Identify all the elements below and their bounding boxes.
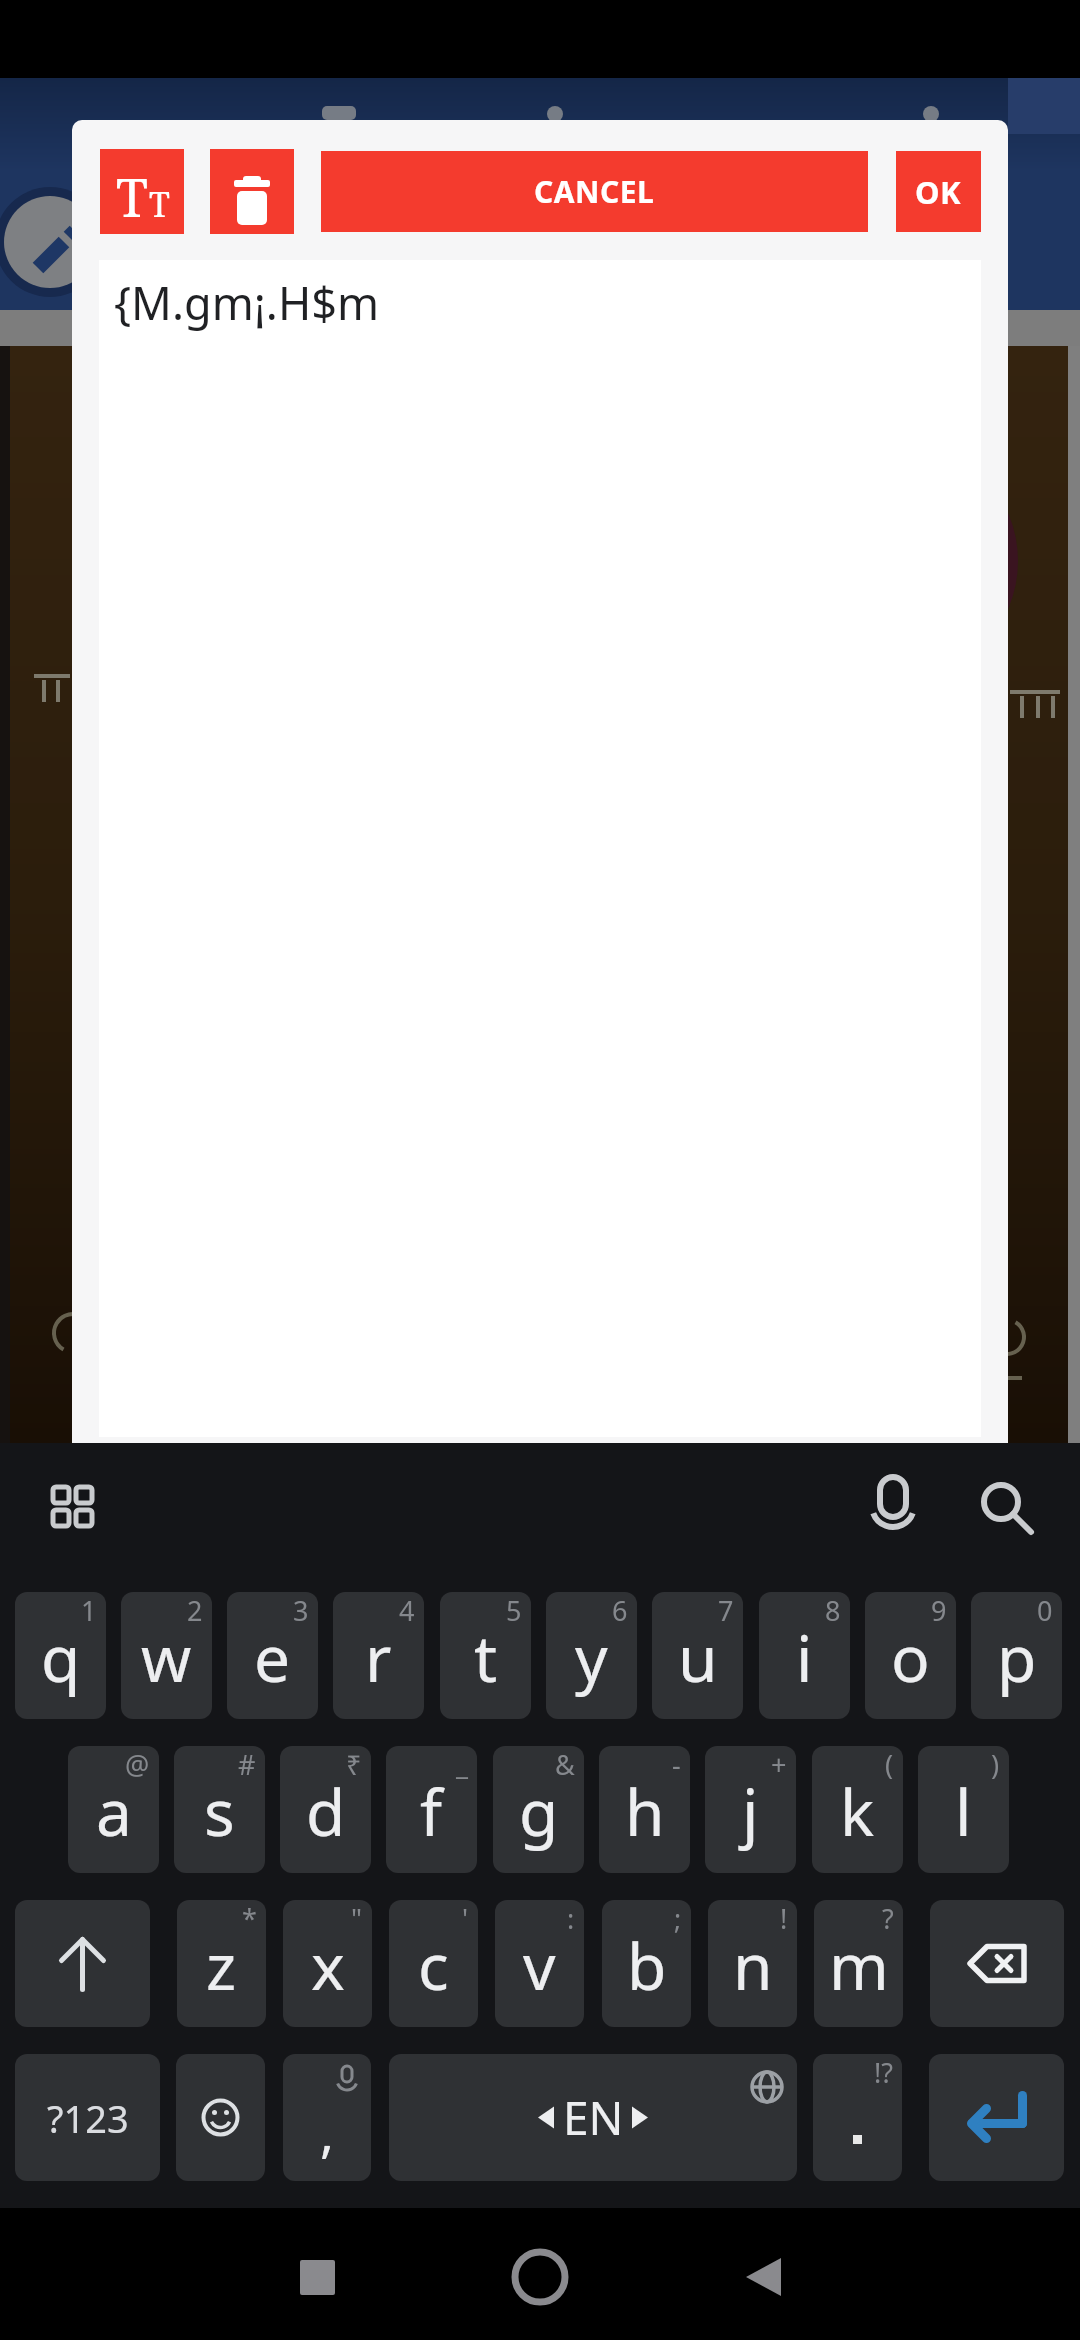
- staticText: ": [351, 1900, 363, 1937]
- staticText: T: [149, 181, 170, 227]
- staticText: w: [141, 1614, 192, 1701]
- staticText: v: [523, 1922, 556, 2009]
- button[interactable]: T: [100, 149, 184, 234]
- staticText: 1: [81, 1592, 97, 1629]
- button[interactable]: ,: [283, 2054, 371, 2181]
- staticText: e: [254, 1614, 291, 1701]
- staticText: j: [742, 1768, 759, 1855]
- staticText: s: [204, 1768, 235, 1855]
- staticText: u: [678, 1614, 718, 1701]
- staticText: ₹: [346, 1746, 362, 1783]
- button[interactable]: !?: [813, 2054, 902, 2181]
- button[interactable]: [176, 2054, 265, 2181]
- button[interactable]: t: [440, 1592, 531, 1719]
- staticText: a: [96, 1768, 132, 1855]
- button[interactable]: m: [814, 1900, 903, 2027]
- button[interactable]: o: [865, 1592, 956, 1719]
- staticText: q: [41, 1614, 81, 1701]
- staticText: 9: [931, 1592, 947, 1629]
- staticText: c: [418, 1922, 449, 2009]
- staticText: 5: [506, 1592, 522, 1629]
- staticText: i: [796, 1614, 813, 1701]
- staticText: m: [829, 1922, 889, 2009]
- staticText: (: [885, 1746, 894, 1783]
- button[interactable]: i: [759, 1592, 850, 1719]
- staticText: ): [991, 1746, 1000, 1783]
- staticText: _: [456, 1746, 468, 1783]
- staticText: n: [733, 1922, 773, 2009]
- staticText: 7: [718, 1592, 734, 1629]
- staticText: p: [997, 1614, 1037, 1701]
- staticText: o: [891, 1614, 930, 1701]
- staticText: t: [474, 1614, 498, 1701]
- staticText: T: [116, 161, 148, 232]
- staticText: :: [567, 1900, 575, 1937]
- staticText: 6: [612, 1592, 628, 1629]
- staticText: !: [780, 1900, 788, 1937]
- staticText: *: [242, 1900, 257, 1937]
- staticText: k: [840, 1768, 875, 1855]
- button[interactable]: j: [705, 1746, 796, 1873]
- button[interactable]: s: [174, 1746, 265, 1873]
- staticText: f: [420, 1768, 443, 1855]
- button[interactable]: OK: [896, 151, 981, 232]
- button[interactable]: r: [333, 1592, 424, 1719]
- staticText: l: [955, 1768, 972, 1855]
- button[interactable]: c: [389, 1900, 478, 2027]
- staticText: !?: [874, 2054, 893, 2091]
- staticText: b: [627, 1922, 667, 2009]
- button[interactable]: n: [708, 1900, 797, 2027]
- staticText: -: [672, 1746, 681, 1783]
- staticText: ': [462, 1900, 469, 1937]
- staticText: h: [625, 1768, 665, 1855]
- staticText: 0: [1037, 1592, 1053, 1629]
- staticText: g: [519, 1768, 559, 1855]
- staticText: ;: [674, 1900, 682, 1937]
- button[interactable]: [729, 2243, 797, 2311]
- button[interactable]: [930, 1900, 1064, 2027]
- button[interactable]: [210, 149, 294, 234]
- button[interactable]: [506, 2243, 574, 2311]
- button[interactable]: w: [121, 1592, 212, 1719]
- button[interactable]: v: [495, 1900, 584, 2027]
- button[interactable]: y: [546, 1592, 637, 1719]
- staticText: ?: [882, 1900, 894, 1937]
- staticText: 4: [399, 1592, 415, 1629]
- button[interactable]: h: [599, 1746, 690, 1873]
- staticText: 2: [187, 1592, 203, 1629]
- button[interactable]: g: [493, 1746, 584, 1873]
- button[interactable]: a: [68, 1746, 159, 1873]
- staticText: ?123: [47, 2092, 129, 2144]
- button[interactable]: [929, 2054, 1064, 2181]
- staticText: CANCEL: [534, 171, 655, 212]
- button[interactable]: x: [283, 1900, 372, 2027]
- staticText: 3: [293, 1592, 309, 1629]
- button[interactable]: l: [918, 1746, 1009, 1873]
- button[interactable]: e: [227, 1592, 318, 1719]
- button[interactable]: ?123: [15, 2054, 160, 2181]
- button[interactable]: q: [15, 1592, 106, 1719]
- button[interactable]: u: [652, 1592, 743, 1719]
- staticText: +: [771, 1746, 787, 1783]
- staticText: &: [555, 1746, 575, 1783]
- button[interactable]: d: [280, 1746, 371, 1873]
- staticText: #: [238, 1746, 256, 1783]
- button[interactable]: EN: [389, 2054, 797, 2181]
- staticText: ,: [320, 2096, 334, 2167]
- staticText: OK: [915, 171, 962, 213]
- button[interactable]: p: [971, 1592, 1062, 1719]
- button[interactable]: k: [812, 1746, 903, 1873]
- staticText: EN: [563, 2086, 624, 2149]
- staticText: y: [575, 1614, 608, 1701]
- button[interactable]: [283, 2243, 351, 2311]
- button[interactable]: b: [602, 1900, 691, 2027]
- staticText: 8: [825, 1592, 841, 1629]
- button[interactable]: CANCEL: [321, 151, 868, 232]
- staticText: d: [306, 1768, 346, 1855]
- button[interactable]: [15, 1900, 150, 2027]
- staticText: r: [365, 1614, 392, 1701]
- button[interactable]: f: [386, 1746, 477, 1873]
- staticText: z: [206, 1922, 237, 2009]
- button[interactable]: z: [177, 1900, 266, 2027]
- staticText: {M.gm¡.H$m: [114, 272, 380, 333]
